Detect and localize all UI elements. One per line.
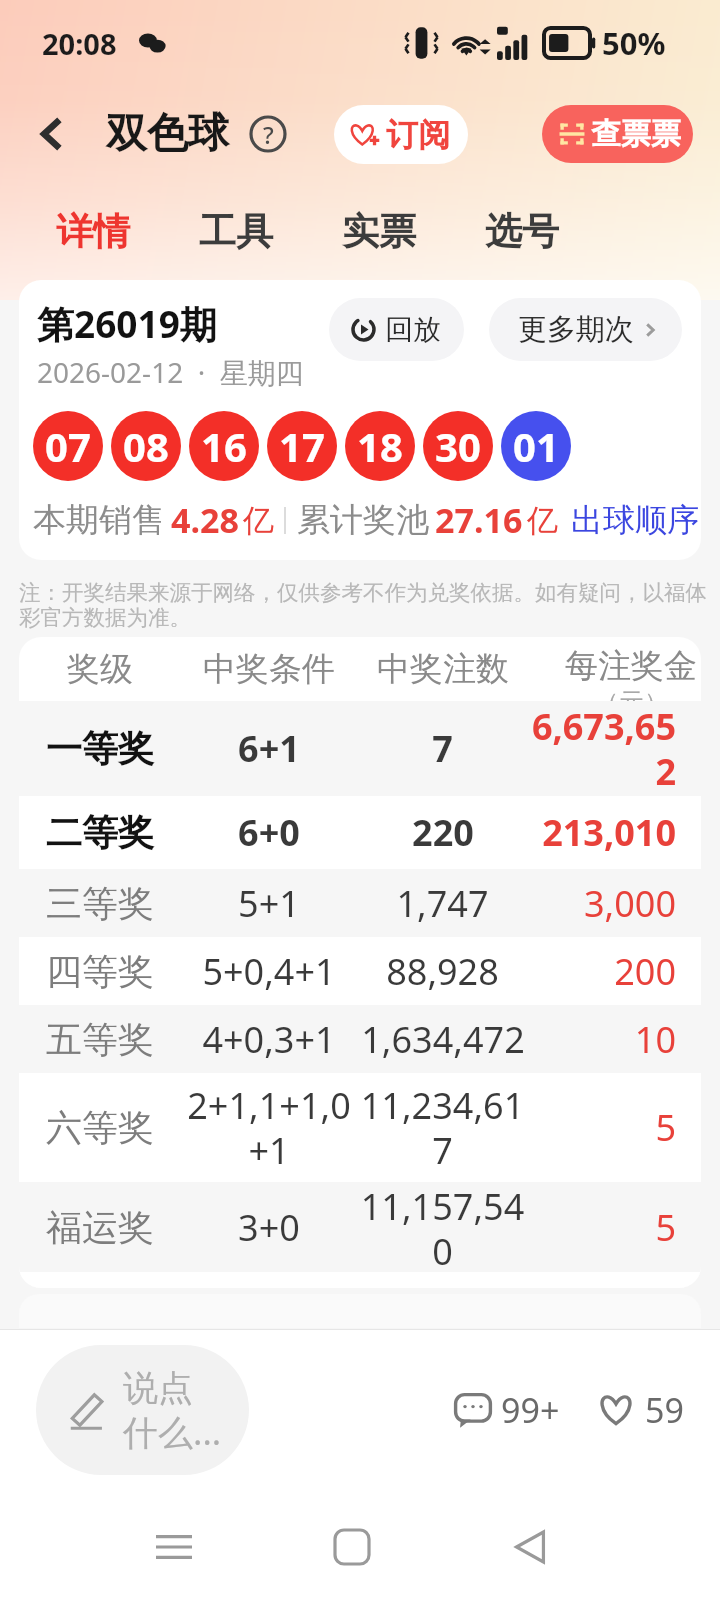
staticText: 选号: [485, 208, 559, 255]
staticText: 中奖条件: [203, 648, 335, 690]
staticText: 6,673,652: [528, 702, 676, 795]
button[interactable]: Help: [245, 111, 291, 157]
staticText: 说点什么...: [123, 1366, 226, 1455]
button[interactable]: 实票: [336, 198, 422, 265]
staticText: 2+1,1+1,0+1: [181, 1081, 357, 1174]
staticText: 六等奖: [46, 1105, 154, 1150]
staticText: 奖级: [67, 648, 133, 690]
staticText: 每注奖金: [565, 645, 697, 687]
staticText: 07: [45, 419, 91, 473]
staticText: 7: [432, 724, 453, 773]
staticText: 双色球: [106, 108, 229, 160]
button[interactable]: 二等奖: [19, 796, 701, 869]
staticText: 亿: [243, 501, 274, 540]
button[interactable]: Back: [24, 105, 82, 163]
button[interactable]: 六等奖: [19, 1073, 701, 1182]
staticText: 01: [513, 419, 559, 473]
staticText: 中奖注数: [377, 648, 509, 690]
staticText: 福运奖: [46, 1205, 154, 1250]
staticText: 亿: [527, 501, 558, 540]
staticText: 6+1: [238, 724, 300, 773]
button[interactable]: 福运奖: [19, 1182, 701, 1272]
staticText: 4+0,3+1: [202, 1015, 336, 1064]
staticText: 88,928: [386, 947, 499, 996]
staticText: 20:08: [42, 24, 117, 63]
staticText: 3+0: [238, 1203, 300, 1252]
staticText: 6+0: [238, 808, 300, 857]
staticText: 5: [528, 1103, 676, 1152]
staticText: 11,234,617: [357, 1081, 528, 1174]
button[interactable]: 查票票: [542, 105, 693, 163]
button[interactable]: Recents: [136, 1509, 212, 1585]
staticText: 2026-02-12 · 星期四: [37, 353, 304, 391]
staticText: 17: [279, 419, 325, 473]
staticText: 查票票: [591, 115, 681, 153]
staticText: 第26019期: [37, 298, 217, 349]
staticText: 200: [528, 947, 676, 996]
staticText: 5+0,4+1: [202, 947, 336, 996]
staticText: 5: [528, 1203, 676, 1252]
staticText: 4.28: [171, 497, 239, 543]
staticText: 工具: [199, 208, 273, 255]
staticText: 30: [435, 419, 481, 473]
staticText: 1,747: [396, 879, 489, 928]
staticText: 10: [528, 1015, 676, 1064]
staticText: 213,010: [528, 808, 676, 857]
button[interactable]: 回放: [329, 298, 464, 361]
staticText: 出球顺序: [571, 500, 699, 540]
staticText: 三等奖: [46, 881, 154, 926]
staticText: 59: [645, 1387, 684, 1433]
staticText: 220: [412, 808, 474, 857]
staticText: 27.16: [435, 497, 523, 543]
button[interactable]: 出球顺序: [571, 500, 699, 540]
staticText: 99+: [501, 1387, 560, 1433]
staticText: 3,000: [528, 879, 676, 928]
staticText: 18: [357, 419, 403, 473]
staticText: ?: [263, 118, 274, 151]
staticText: 订阅: [386, 115, 450, 155]
staticText: 50%: [602, 22, 666, 64]
staticText: 四等奖: [46, 949, 154, 994]
staticText: 二等奖: [46, 810, 154, 855]
staticText: 5+1: [238, 879, 300, 928]
button[interactable]: 四等奖: [19, 937, 701, 1005]
button[interactable]: 一等奖: [19, 701, 701, 796]
button[interactable]: 59: [596, 1381, 686, 1439]
staticText: （元）: [594, 687, 669, 701]
button[interactable]: 三等奖: [19, 869, 701, 937]
button[interactable]: 说点什么...: [36, 1345, 249, 1475]
button[interactable]: Back: [492, 1509, 568, 1585]
staticText: 详情: [56, 208, 130, 255]
button[interactable]: Home: [314, 1509, 390, 1585]
staticText: 本期销售: [33, 499, 165, 541]
staticText: 累计奖池: [297, 499, 429, 541]
staticText: 16: [201, 419, 247, 473]
button[interactable]: 工具: [193, 198, 279, 265]
staticText: 五等奖: [46, 1017, 154, 1062]
button[interactable]: 选号: [479, 198, 565, 265]
button[interactable]: 订阅: [334, 105, 468, 164]
staticText: 08: [123, 419, 169, 473]
button[interactable]: 五等奖: [19, 1005, 701, 1073]
button[interactable]: 详情: [50, 198, 136, 265]
staticText: 11,157,540: [357, 1182, 528, 1272]
button[interactable]: 更多期次: [489, 298, 682, 361]
staticText: 实票: [342, 208, 416, 255]
staticText: 1,634,472: [361, 1015, 525, 1064]
staticText: 一等奖: [46, 726, 154, 771]
staticText: 注：开奖结果来源于网络，仅供参考不作为兑奖依据。如有疑问，以福体彩官方数据为准。: [19, 579, 720, 632]
staticText: 更多期次: [518, 311, 634, 348]
button[interactable]: 99+: [452, 1381, 562, 1439]
staticText: 回放: [385, 312, 441, 347]
